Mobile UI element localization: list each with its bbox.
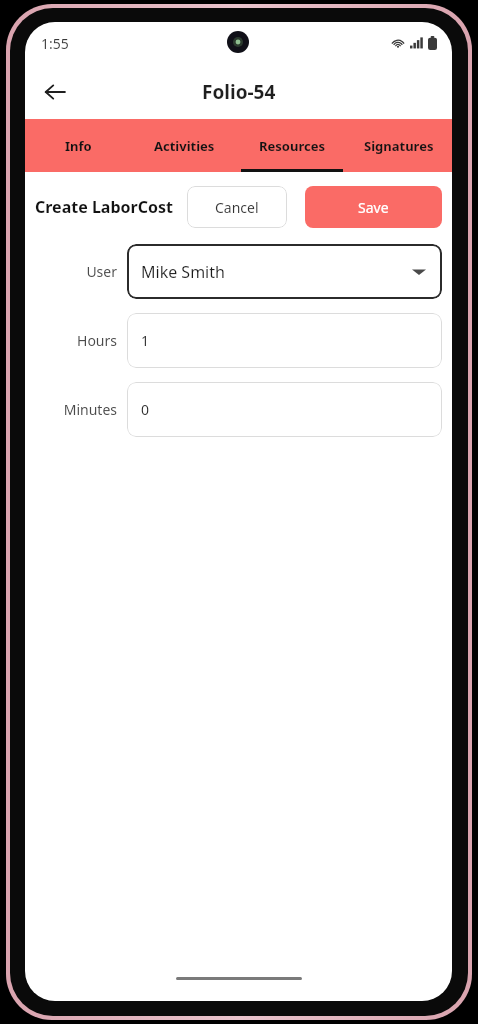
staticText: 0 [141, 400, 150, 419]
button[interactable]: 0 [127, 382, 442, 437]
staticText: User [86, 262, 117, 281]
staticText: Mike Smith [141, 261, 225, 283]
button[interactable]: Save [305, 186, 442, 228]
staticText: Resources [259, 137, 325, 155]
staticText: Activities [154, 137, 215, 155]
staticText: Save [358, 198, 389, 217]
button[interactable]: Mike Smith [127, 244, 442, 299]
staticText: 1 [141, 331, 150, 350]
button[interactable]: 1 [127, 313, 442, 368]
staticText: 1:55 [41, 34, 69, 53]
staticText: Hours [77, 331, 117, 350]
button[interactable]: Info [25, 119, 131, 172]
button[interactable]: Activities [131, 119, 238, 172]
staticText: Minutes [63, 400, 117, 419]
staticText: Folio-54 [202, 79, 276, 105]
button[interactable]: Signatures [345, 119, 452, 172]
staticText: Create LaborCost [35, 196, 173, 218]
staticText: Signatures [364, 137, 434, 155]
button[interactable]: Back [33, 70, 77, 114]
staticText: Info [65, 137, 92, 155]
button[interactable]: Resources [238, 119, 345, 172]
button[interactable]: Cancel [187, 186, 287, 228]
staticText: Cancel [215, 198, 259, 217]
